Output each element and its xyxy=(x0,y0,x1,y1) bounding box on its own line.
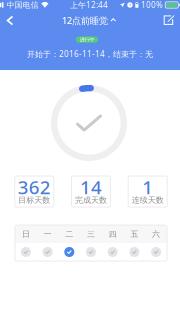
button[interactable]: 362 xyxy=(15,176,54,207)
staticText: 五 xyxy=(130,229,138,239)
button[interactable]: Back xyxy=(0,9,23,31)
staticText: 二 xyxy=(65,229,73,239)
button[interactable]: 1 xyxy=(128,176,167,207)
staticText: 目标天数 xyxy=(18,195,50,205)
staticText: 上午12:44 xyxy=(70,0,108,10)
staticText: 开始于：2016-11-14，结束于：无 xyxy=(27,49,153,59)
staticText: 362 xyxy=(18,175,51,199)
staticText: 三 xyxy=(87,229,95,239)
staticText: 一 xyxy=(44,229,52,239)
staticText: 14 xyxy=(80,175,102,199)
button[interactable]: 二 xyxy=(58,243,80,261)
button[interactable]: 14 xyxy=(71,176,110,207)
staticText: 连续天数 xyxy=(132,195,164,205)
button[interactable]: 五 xyxy=(124,243,145,261)
staticText: 中国电信 xyxy=(6,0,38,10)
button[interactable]: 三 xyxy=(80,243,102,261)
staticText: 完成天数 xyxy=(75,195,107,205)
staticText: 四 xyxy=(109,229,117,239)
staticText: 日 xyxy=(22,229,30,239)
button[interactable]: 四 xyxy=(102,243,124,261)
staticText: 1 xyxy=(142,175,153,199)
staticText: 12点前睡觉 xyxy=(62,14,108,27)
button[interactable]: 六 xyxy=(145,243,167,261)
staticText: 进行中 xyxy=(79,36,94,43)
button[interactable]: Edit xyxy=(157,9,180,31)
button[interactable]: 一 xyxy=(37,243,58,261)
staticText: 100% xyxy=(141,0,163,10)
staticText: 六 xyxy=(152,229,160,239)
button[interactable]: 日 xyxy=(15,243,37,261)
